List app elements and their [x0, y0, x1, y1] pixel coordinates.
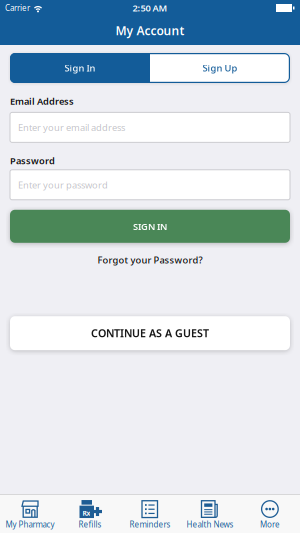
button[interactable]: My Pharmacy: [0, 494, 60, 533]
staticText: Refills: [78, 519, 101, 530]
button[interactable]: Rx: [60, 494, 120, 533]
staticText: More: [260, 519, 280, 530]
button[interactable]: CONTINUE AS A GUEST: [10, 316, 290, 350]
button[interactable]: Sign Up: [150, 53, 290, 83]
staticText: Sign In: [64, 62, 95, 74]
staticText: Health News: [186, 519, 233, 530]
button[interactable]: Reminders: [120, 494, 180, 533]
staticText: Forgot your Password?: [97, 254, 202, 266]
button[interactable]: Health News: [180, 494, 240, 533]
button[interactable]: More: [240, 494, 300, 533]
staticText: My Account: [115, 22, 184, 38]
button[interactable]: Enter your email address: [10, 112, 290, 142]
staticText: Reminders: [129, 519, 170, 530]
staticText: Sign Up: [202, 62, 237, 74]
staticText: My Pharmacy: [5, 519, 54, 530]
staticText: 2:50 AM: [132, 2, 167, 14]
staticText: Enter your email address: [18, 121, 125, 134]
staticText: Enter your password: [18, 179, 108, 191]
button[interactable]: Forgot your Password?: [97, 254, 202, 266]
button[interactable]: Enter your password: [10, 170, 290, 200]
staticText: CONTINUE AS A GUEST: [91, 326, 209, 340]
staticText: SIGN IN: [133, 220, 167, 232]
staticText: Carrier: [5, 3, 30, 13]
staticText: Rx: [82, 509, 90, 517]
staticText: Email Address: [10, 95, 74, 107]
button[interactable]: SIGN IN: [10, 210, 290, 243]
staticText: Password: [10, 154, 55, 167]
button[interactable]: Sign In: [10, 53, 150, 83]
